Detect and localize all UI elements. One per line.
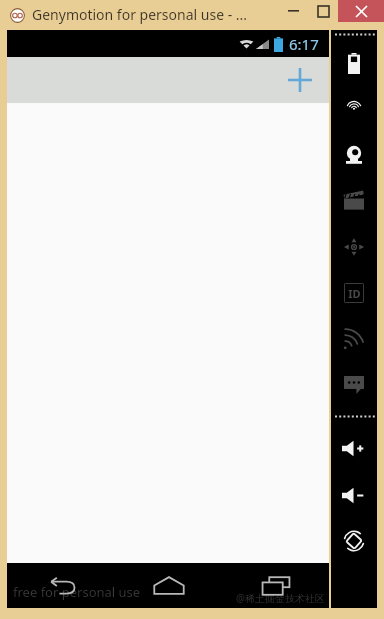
button[interactable]: Camera (337, 143, 371, 167)
button[interactable]: Messages (337, 373, 371, 397)
button[interactable]: Video (337, 189, 371, 213)
button[interactable]: Home (115, 563, 222, 608)
button[interactable]: Volume down (337, 483, 371, 507)
button[interactable]: Rotate (337, 529, 371, 553)
button[interactable]: D-pad (337, 235, 371, 259)
button[interactable]: Battery (337, 51, 371, 75)
button[interactable]: Volume up (337, 436, 371, 460)
button[interactable]: GPS (337, 98, 371, 122)
button[interactable]: Network (337, 327, 371, 351)
button[interactable]: Add (279, 59, 321, 101)
button[interactable]: Close (338, 0, 384, 22)
button[interactable]: Back (7, 563, 115, 608)
staticText: @稀土掘金技术社区 (236, 591, 325, 605)
staticText: Genymotion for personal use - ... (32, 5, 248, 24)
button[interactable]: Identifiers (337, 281, 371, 305)
staticText: free for personal use (13, 583, 141, 601)
button[interactable]: Minimize (278, 0, 308, 22)
button[interactable]: Maximize (308, 0, 338, 22)
button[interactable]: Recent apps (222, 563, 329, 608)
staticText: 6:17 (289, 34, 319, 54)
staticText: ID (348, 286, 361, 301)
